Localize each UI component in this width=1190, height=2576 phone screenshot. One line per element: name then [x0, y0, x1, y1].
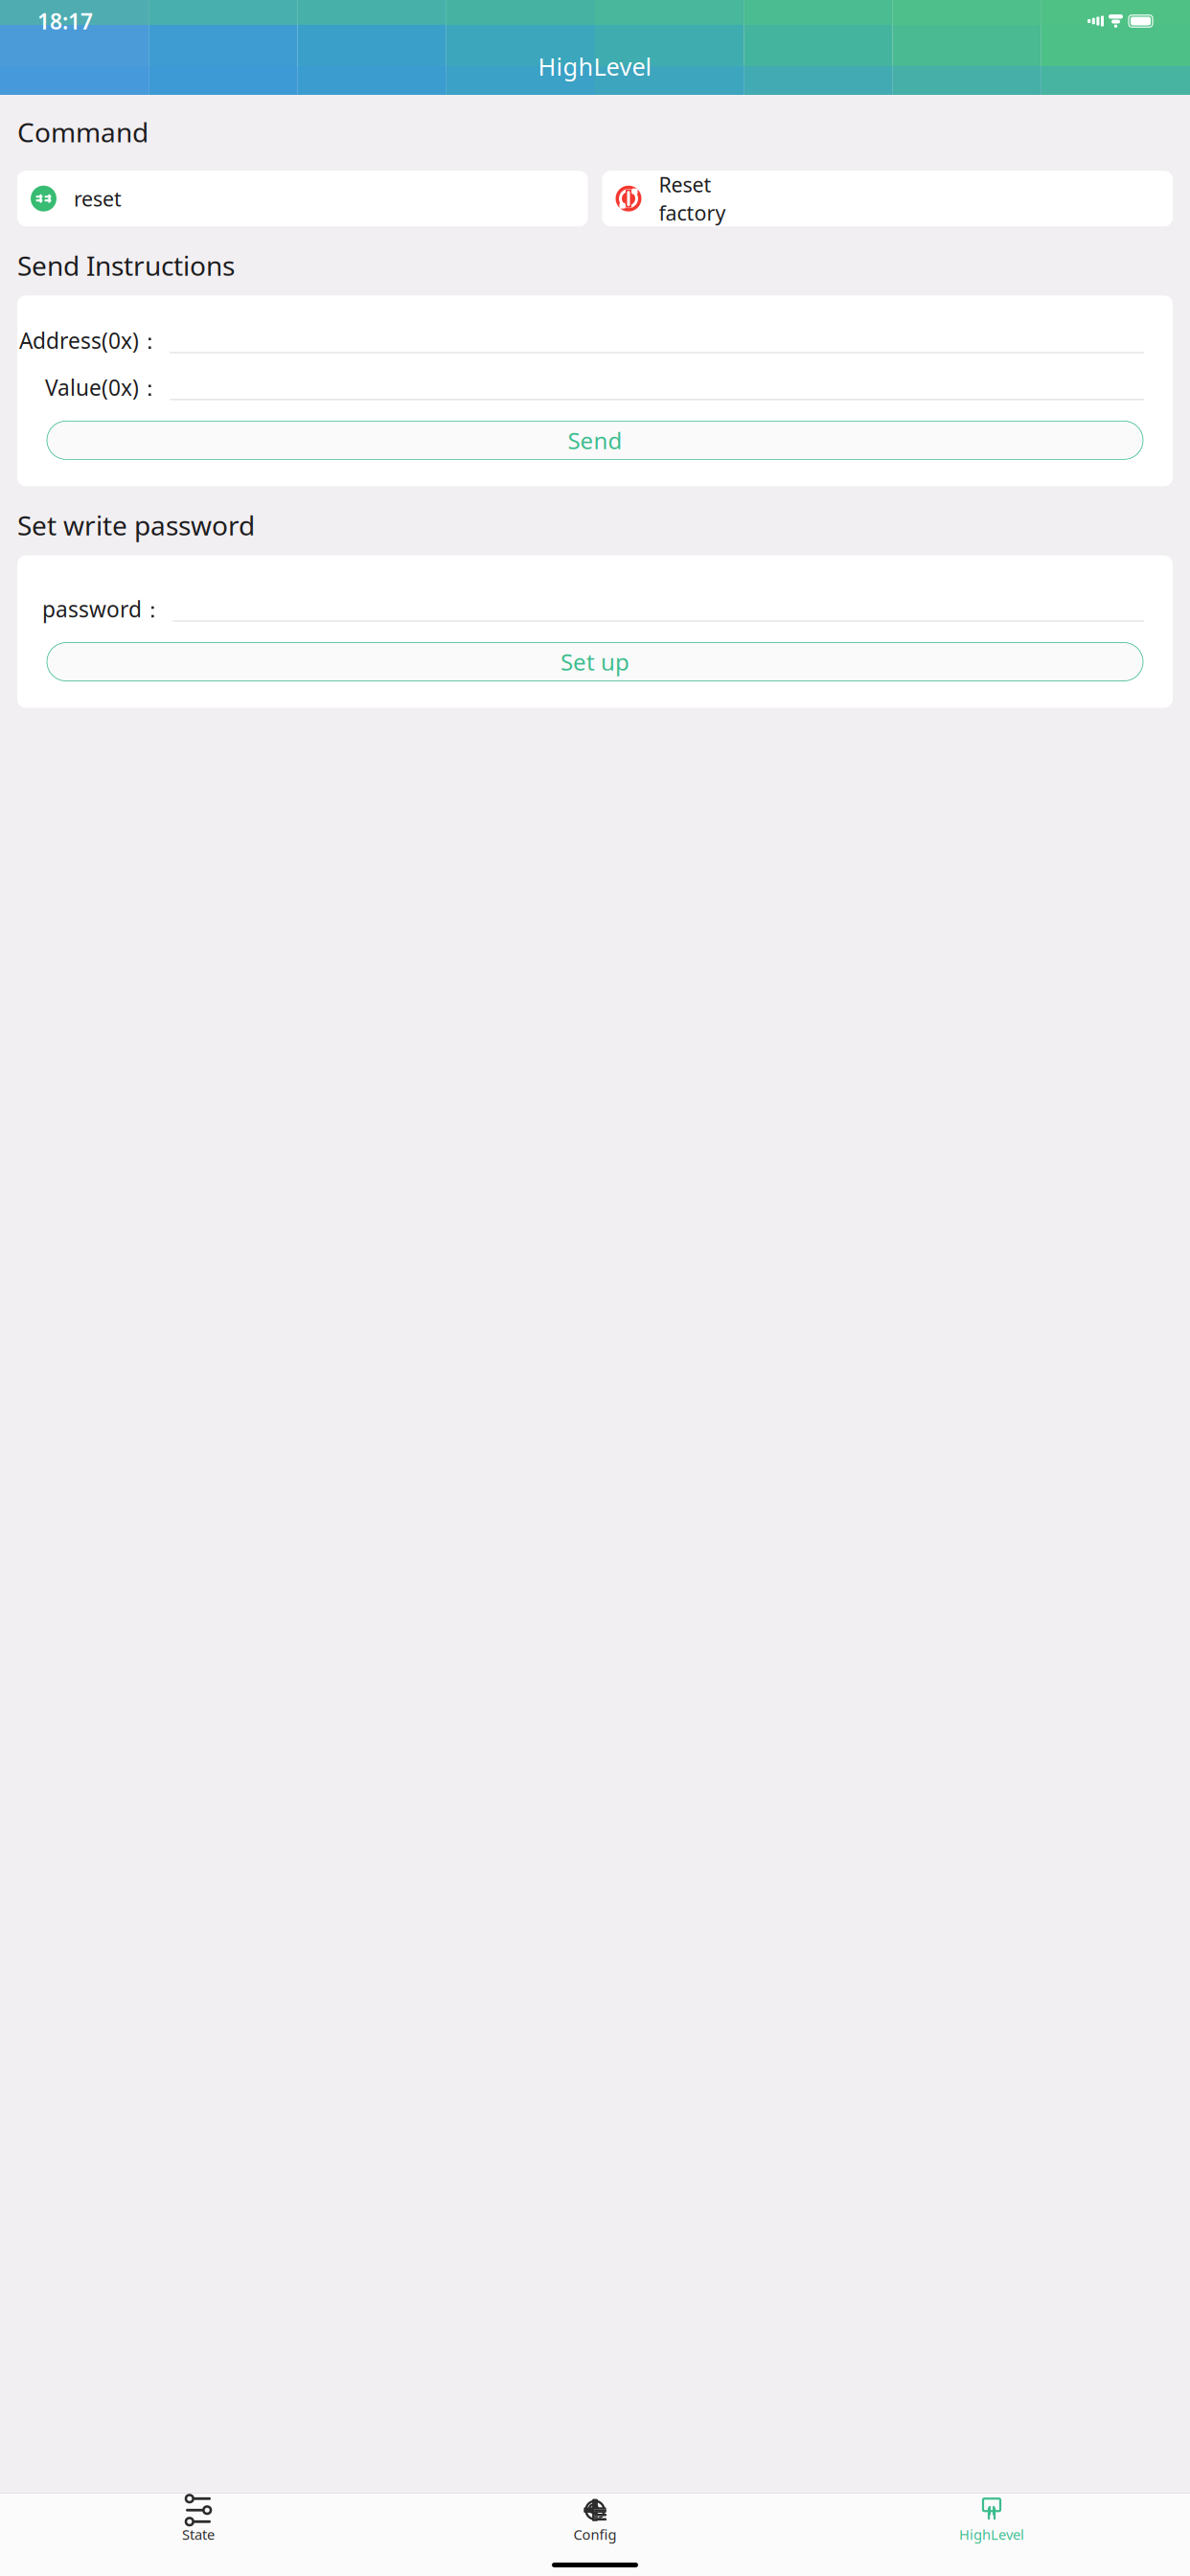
- button[interactable]: HighLevel: [793, 2491, 1190, 2544]
- button[interactable]: reset: [17, 171, 588, 226]
- staticText: Send Instructions: [17, 247, 235, 283]
- staticText: HighLevel: [959, 2525, 1024, 2544]
- staticText: Value(0x)：: [45, 373, 161, 402]
- button[interactable]: Reset: [602, 171, 1173, 226]
- staticText: password：: [42, 595, 164, 623]
- staticText: Set write password: [17, 507, 255, 543]
- staticText: State: [182, 2525, 215, 2544]
- staticText: 18:17: [37, 7, 93, 35]
- button[interactable]: Send: [47, 421, 1143, 459]
- staticText: reset: [74, 185, 122, 212]
- staticText: HighLevel: [538, 50, 652, 82]
- staticText: Address(0x)：: [19, 326, 161, 355]
- staticText: factory: [659, 199, 726, 226]
- staticText: Reset: [659, 171, 711, 198]
- button[interactable]: State: [0, 2491, 397, 2544]
- staticText: Config: [573, 2525, 617, 2544]
- staticText: Send: [568, 425, 622, 455]
- button[interactable]: Config: [397, 2491, 793, 2544]
- staticText: Set up: [561, 646, 629, 677]
- button[interactable]: Set up: [47, 643, 1143, 681]
- staticText: Command: [17, 114, 149, 150]
